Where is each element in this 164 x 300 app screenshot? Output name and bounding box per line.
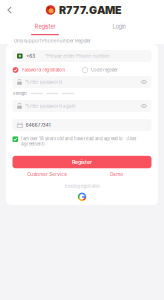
button[interactable]: Password registration (12, 67, 82, 73)
button[interactable]: Back (3, 3, 16, 16)
staticText: Strength (12, 91, 26, 96)
button[interactable]: Demo (82, 172, 151, 177)
button[interactable]: Login (82, 21, 156, 37)
button[interactable]: Customer Service (12, 172, 82, 177)
button[interactable]: Show password (141, 80, 147, 84)
staticText: *Please enter Phone number (45, 53, 110, 59)
staticText: Login (112, 23, 125, 30)
button[interactable]: Show confirm password (141, 104, 147, 108)
staticText: Register (72, 159, 92, 165)
staticText: 646677341 (26, 122, 51, 128)
staticText: Demo (110, 172, 123, 177)
button[interactable]: Code register (82, 67, 151, 73)
staticText: R777.GAME (59, 3, 122, 16)
staticText: Code register (91, 67, 118, 73)
staticText: *Enter password again (25, 103, 76, 109)
staticText: Password registration (21, 67, 65, 73)
staticText: I am over 18 years old and have read and… (21, 136, 137, 147)
button[interactable]: I am over 18 years old and have read and… (12, 136, 151, 147)
button[interactable]: Register (12, 156, 151, 168)
button[interactable]: Register (8, 21, 82, 37)
button[interactable]: Continue with Google (77, 192, 86, 201)
staticText: Only support Phone number Register (14, 38, 91, 44)
staticText: +63 (26, 53, 35, 59)
staticText: *Enter password (25, 79, 62, 85)
staticText: Boosting registration (64, 184, 99, 189)
staticText: Customer Service (27, 172, 67, 177)
staticText: Register (34, 23, 55, 30)
